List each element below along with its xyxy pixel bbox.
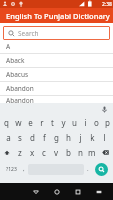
button[interactable]: z [14,145,26,160]
button[interactable]: g [50,130,62,145]
button[interactable]: n [74,145,86,160]
staticText: q [4,117,9,128]
button[interactable]: Abandon [0,82,113,95]
button[interactable]: A [0,40,113,53]
button[interactable]: k [86,130,98,145]
staticText: u [72,117,77,128]
button[interactable]: Abandon [0,96,113,103]
button[interactable]: r [36,115,47,130]
staticText: Aback [6,56,25,65]
staticText: j [79,132,82,143]
button[interactable]: b [62,145,74,160]
button[interactable]: l [98,130,110,145]
button[interactable]: Back [25,183,46,200]
button[interactable]: . [84,162,92,176]
button[interactable]: q [0,115,12,130]
button[interactable]: Search [3,26,110,40]
staticText: Abandon [6,96,34,103]
button[interactable]: t [47,115,58,130]
staticText: o [94,117,99,128]
staticText: k [90,132,95,143]
button[interactable]: ?123 [2,162,20,176]
button[interactable]: d [26,130,38,145]
staticText: x [30,147,35,158]
button[interactable]: Aback [0,54,113,67]
button[interactable]: c [38,145,50,160]
staticText: a [6,132,11,143]
button[interactable]: f [38,130,50,145]
button[interactable]: Backspace [98,145,113,160]
staticText: r [40,117,44,128]
button[interactable]: m [86,145,98,160]
staticText: m [88,147,96,158]
staticText: b [66,147,71,158]
button[interactable]: v [50,145,62,160]
staticText: f [43,132,46,143]
button[interactable]: Recent apps [67,183,88,200]
button[interactable]: j [74,130,86,145]
button[interactable]: x [26,145,38,160]
staticText: g [54,132,59,143]
button[interactable]: u [69,115,80,130]
staticText: Search [18,29,39,38]
staticText: h [66,132,71,143]
staticText: s [18,132,22,143]
button[interactable]: o [91,115,102,130]
button[interactable]: Home [46,183,67,200]
button[interactable]: Switch keyboard [88,183,109,200]
button[interactable]: p [102,115,113,130]
staticText: t [51,117,54,128]
button[interactable]: a [3,130,14,145]
staticText: v [54,147,59,158]
button[interactable]: i [80,115,91,130]
staticText: Abacus [6,70,29,79]
staticText: ?123 [6,166,17,173]
staticText: English To Punjabi Dictionary [6,11,110,21]
button[interactable]: Shift [0,145,14,160]
staticText: p [105,117,110,128]
staticText: y [61,117,66,128]
staticText: e [28,117,33,128]
button[interactable]: Abacus [0,68,113,81]
button[interactable]: e [24,115,36,130]
staticText: c [42,147,46,158]
button[interactable]: Voice input [99,104,109,114]
button[interactable]: h [62,130,74,145]
staticText: . [87,165,89,173]
button[interactable]: y [58,115,69,130]
staticText: w [15,117,22,128]
button[interactable]: , [20,162,28,176]
staticText: n [78,147,83,158]
button[interactable]: s [14,130,26,145]
button[interactable]: Search [95,163,108,176]
staticText: i [84,117,87,128]
staticText: A [6,42,11,51]
staticText: 2:38 [102,1,112,8]
staticText: l [103,132,106,143]
staticText: z [18,147,22,158]
button[interactable]: w [12,115,24,130]
staticText: d [30,132,35,143]
staticText: , [23,165,25,173]
staticText: Abandon [6,84,34,93]
